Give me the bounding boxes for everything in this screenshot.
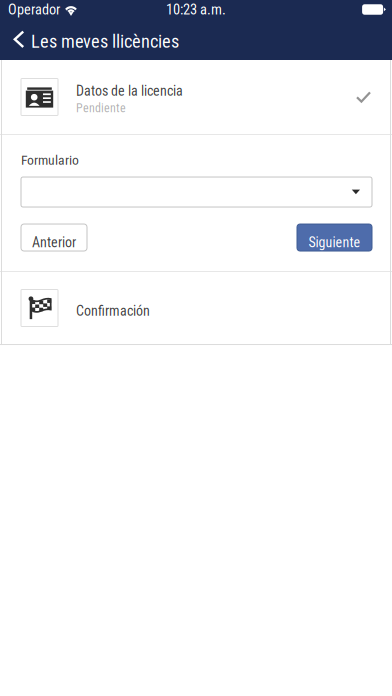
- staticText: Les meves llicències: [31, 31, 179, 52]
- button[interactable]: Anterior: [21, 224, 87, 251]
- staticText: Datos de la licencia: [76, 83, 183, 99]
- button[interactable]: Siguiente: [297, 224, 372, 251]
- staticText: Confirmación: [76, 303, 150, 319]
- staticText: Pendiente: [76, 101, 126, 115]
- staticText: Siguiente: [308, 234, 360, 251]
- button[interactable]: Back: [0, 19, 189, 60]
- button[interactable]: Datos de la licencia: [0, 60, 392, 134]
- staticText: Operador: [8, 1, 60, 18]
- button[interactable]: Formulario: [21, 177, 372, 207]
- staticText: Formulario: [21, 152, 79, 168]
- staticText: 10:23 a.m.: [166, 1, 226, 18]
- button[interactable]: Confirmación: [0, 272, 392, 344]
- staticText: Anterior: [32, 234, 76, 251]
